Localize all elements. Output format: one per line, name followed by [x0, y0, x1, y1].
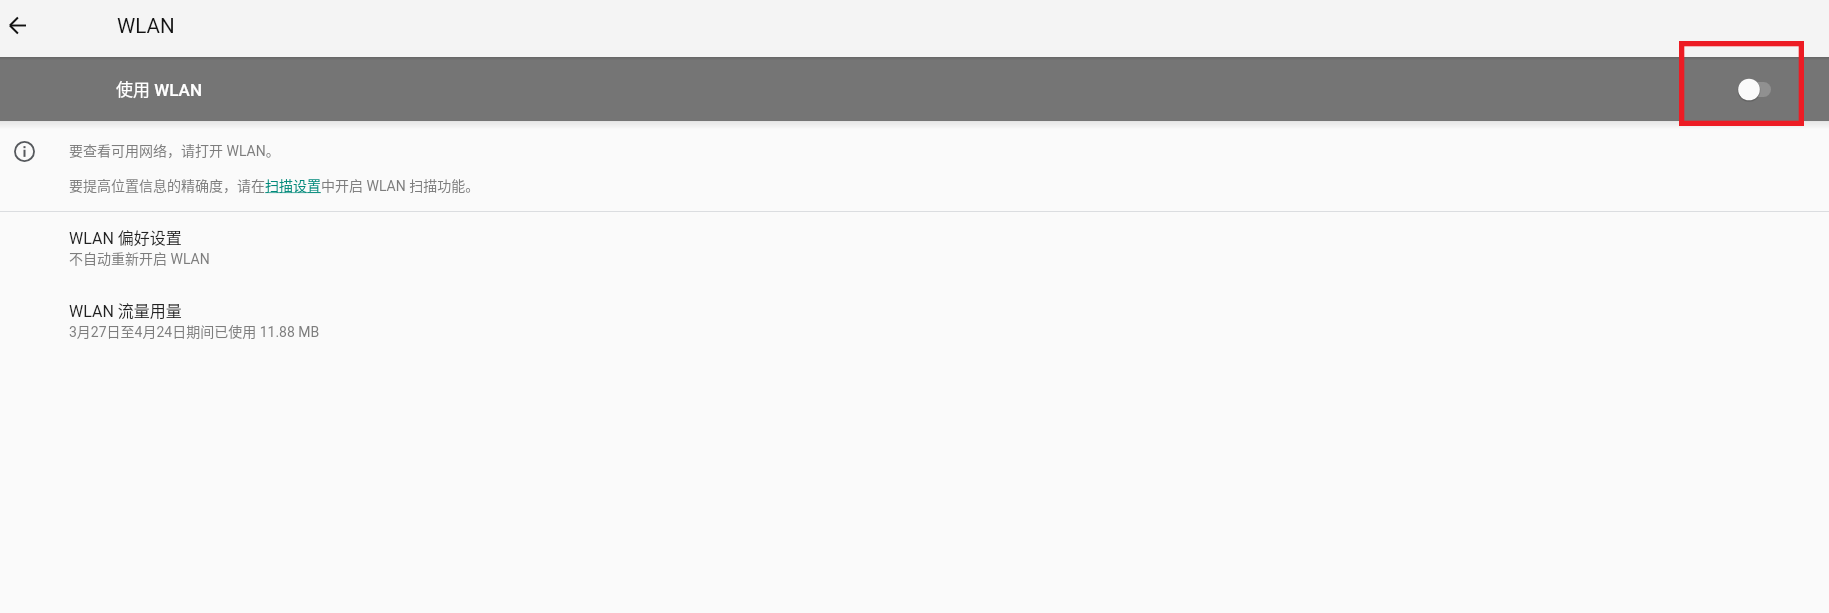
staticText: 使用 WLAN: [116, 76, 202, 101]
staticText: 不自动重新开启 WLAN: [69, 248, 210, 268]
staticText: 要查看可用网络，请打开 WLAN。: [69, 140, 280, 160]
staticText: 要提高位置信息的精确度，请在扫描设置中开启 WLAN 扫描功能。: [69, 175, 480, 195]
button[interactable]: WLAN 流量用量: [0, 285, 1829, 358]
button[interactable]: Use WLAN: [1737, 78, 1769, 101]
staticText: WLAN: [117, 14, 175, 38]
button[interactable]: 扫描设置: [265, 177, 321, 196]
staticText: WLAN 偏好设置: [69, 225, 182, 248]
staticText: 3月27日至4月24日期间已使用 11.88 MB: [69, 321, 320, 341]
button[interactable]: Back: [0, 1, 41, 49]
button[interactable]: 使用 WLAN: [0, 57, 1829, 121]
button[interactable]: WLAN 偏好设置: [0, 212, 1829, 285]
staticText: WLAN 流量用量: [69, 298, 182, 321]
